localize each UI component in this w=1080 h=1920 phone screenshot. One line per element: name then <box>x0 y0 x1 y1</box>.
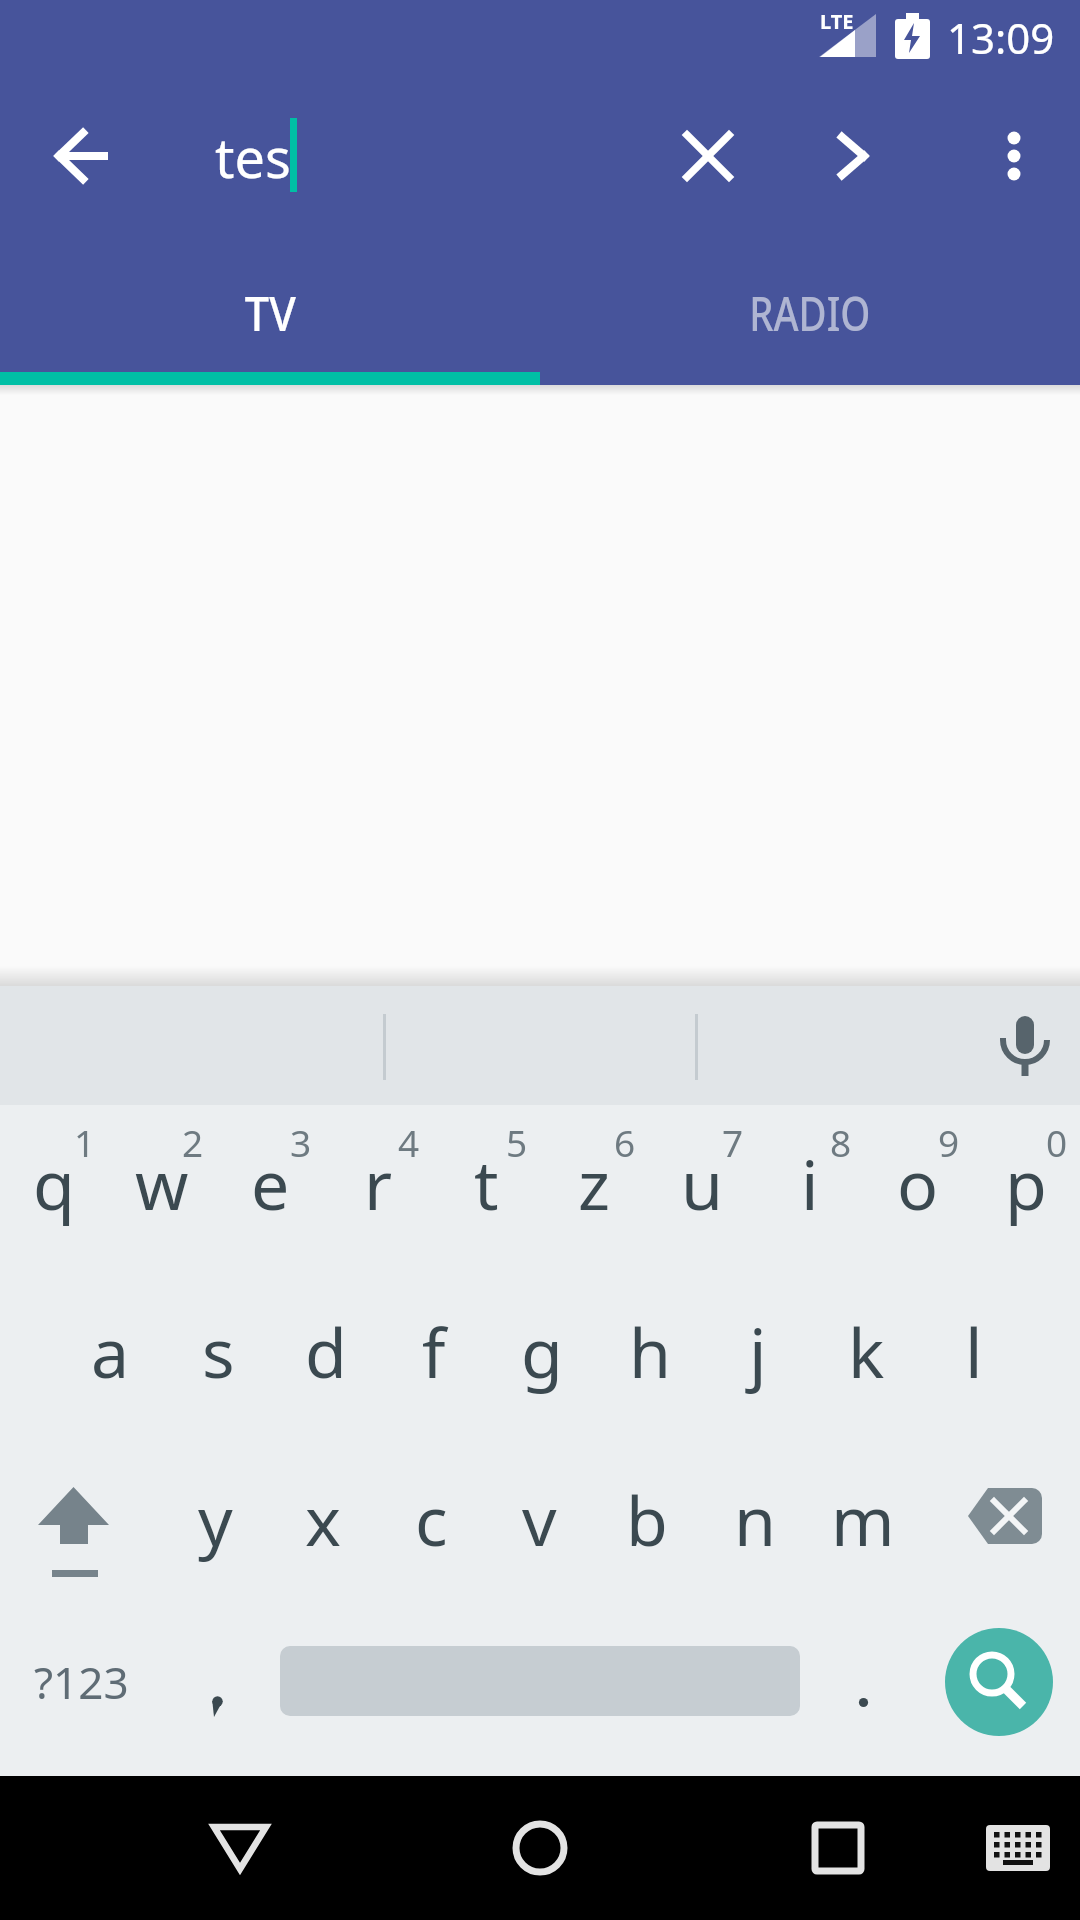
button[interactable] <box>945 1628 1053 1736</box>
button[interactable]: RADIO <box>540 252 1080 372</box>
button[interactable]: e <box>216 1105 324 1273</box>
staticText: i <box>801 1137 819 1230</box>
button[interactable]: p <box>972 1105 1080 1273</box>
staticText: v <box>522 1473 557 1566</box>
staticText: y <box>198 1473 233 1566</box>
staticText: o <box>897 1137 939 1230</box>
button[interactable]: z <box>540 1105 648 1273</box>
button[interactable]: s <box>164 1273 272 1441</box>
staticText: 1 <box>74 1117 96 1167</box>
button[interactable]: o <box>864 1105 972 1273</box>
button[interactable]: x <box>269 1441 377 1609</box>
button[interactable]: g <box>488 1273 596 1441</box>
staticText: 2 <box>182 1117 204 1167</box>
button[interactable]: m <box>809 1441 917 1609</box>
staticText: x <box>305 1473 341 1566</box>
button[interactable] <box>977 998 1073 1094</box>
button[interactable]: q <box>0 1105 108 1273</box>
button[interactable]: l <box>920 1273 1028 1441</box>
staticText: LTE <box>820 8 854 35</box>
button[interactable] <box>810 1609 918 1776</box>
button[interactable]: t <box>432 1105 540 1273</box>
button[interactable]: i <box>756 1105 864 1273</box>
staticText: 8 <box>830 1117 852 1167</box>
staticText: k <box>848 1305 885 1398</box>
staticText: g <box>521 1305 563 1398</box>
button[interactable]: y <box>161 1441 269 1609</box>
staticText: l <box>965 1305 983 1398</box>
staticText: 9 <box>938 1117 960 1167</box>
button[interactable]: u <box>648 1105 756 1273</box>
button[interactable]: w <box>108 1105 216 1273</box>
button[interactable]: d <box>272 1273 380 1441</box>
button[interactable] <box>0 1441 161 1609</box>
button[interactable]: ?123 <box>0 1609 162 1776</box>
staticText: RADIO <box>749 280 871 345</box>
button[interactable]: c <box>377 1441 485 1609</box>
staticText: 5 <box>506 1117 528 1167</box>
button[interactable] <box>660 108 756 204</box>
staticText: c <box>415 1473 448 1566</box>
button[interactable] <box>966 108 1062 204</box>
button[interactable]: TV <box>0 252 540 372</box>
staticText: 13:09 <box>947 9 1055 66</box>
staticText: n <box>734 1473 777 1566</box>
button[interactable]: r <box>324 1105 432 1273</box>
staticText: 0 <box>1046 1117 1068 1167</box>
button[interactable]: j <box>704 1273 812 1441</box>
staticText: p <box>1005 1137 1047 1230</box>
button[interactable] <box>805 108 901 204</box>
staticText: w <box>135 1137 189 1230</box>
button[interactable]: f <box>380 1273 488 1441</box>
button[interactable] <box>958 1788 1078 1908</box>
button[interactable] <box>36 108 132 204</box>
staticText: a <box>91 1305 130 1398</box>
staticText: e <box>251 1137 290 1230</box>
staticText: h <box>629 1305 672 1398</box>
button[interactable] <box>180 1788 300 1908</box>
staticText: t <box>474 1137 499 1230</box>
button[interactable]: v <box>485 1441 593 1609</box>
staticText: TV <box>245 280 296 345</box>
button[interactable] <box>162 1609 270 1776</box>
staticText: tes <box>215 120 291 194</box>
staticText: f <box>422 1305 446 1398</box>
staticText: r <box>364 1137 393 1230</box>
staticText: 4 <box>398 1117 420 1167</box>
button[interactable] <box>480 1788 600 1908</box>
button[interactable]: b <box>593 1441 701 1609</box>
staticText: 6 <box>614 1117 636 1167</box>
staticText: s <box>202 1305 235 1398</box>
staticText: u <box>681 1137 724 1230</box>
staticText: 7 <box>722 1117 744 1167</box>
staticText: q <box>33 1137 75 1230</box>
staticText: d <box>305 1305 347 1398</box>
staticText: ?123 <box>34 1652 129 1712</box>
button[interactable] <box>917 1441 1080 1609</box>
staticText: m <box>831 1473 895 1566</box>
button[interactable]: k <box>812 1273 920 1441</box>
staticText: b <box>626 1473 668 1566</box>
button[interactable]: h <box>596 1273 704 1441</box>
staticText: 3 <box>290 1117 312 1167</box>
button[interactable]: n <box>701 1441 809 1609</box>
staticText: z <box>578 1137 610 1230</box>
staticText: j <box>749 1305 767 1398</box>
button[interactable]: a <box>56 1273 164 1441</box>
button[interactable] <box>778 1788 898 1908</box>
